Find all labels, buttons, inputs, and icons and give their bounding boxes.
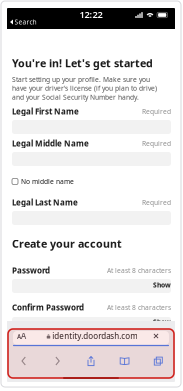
- staticText: Confirm Password: [12, 302, 84, 313]
- staticText: Show: [153, 281, 171, 289]
- staticText: Required: [142, 198, 171, 207]
- staticText: Legal Middle Name: [12, 138, 89, 149]
- staticText: You're in! Let's get started: [12, 56, 153, 70]
- staticText: At least 8 characters: [107, 266, 171, 275]
- staticText: Create your account: [12, 236, 122, 251]
- staticText: Required: [142, 139, 171, 148]
- staticText: Legal First Name: [12, 106, 79, 117]
- staticText: ᴀA: [17, 331, 26, 341]
- staticText: Password: [12, 265, 50, 276]
- staticText: Search: [14, 18, 36, 26]
- staticText: At least 8 characters: [107, 303, 171, 312]
- staticText: Show: [153, 318, 171, 326]
- staticText: 12:22: [79, 8, 102, 21]
- staticText: Start setting up your profile. Make sure…: [12, 75, 157, 102]
- staticText: Required: [142, 107, 171, 116]
- staticText: Legal Last Name: [12, 197, 78, 208]
- staticText: identity.doordash.com: [52, 331, 137, 341]
- staticText: No middle name: [21, 177, 74, 186]
